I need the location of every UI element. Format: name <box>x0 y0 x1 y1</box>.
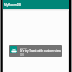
staticText: Room <box>20 46 27 49</box>
staticText: It's try Toast with custom view <box>20 49 61 53</box>
button[interactable]: App icon <box>9 45 62 57</box>
other: App icon <box>10 46 17 53</box>
staticText: MyRoomDB <box>4 3 21 7</box>
staticText: OK <box>20 53 24 57</box>
button[interactable]: MyRoomDB <box>3 0 69 9</box>
